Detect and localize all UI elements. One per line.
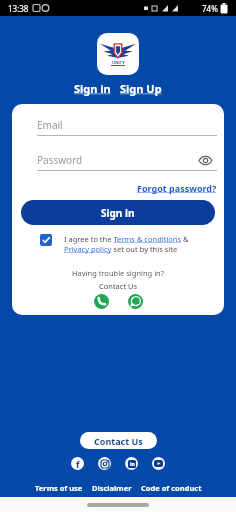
staticText: 13:38	[8, 3, 29, 14]
button[interactable]: Sign Up	[120, 81, 162, 96]
button[interactable]: f	[71, 457, 84, 470]
button[interactable]: Privacy policy set out by this site	[64, 244, 178, 254]
button[interactable]: Contact Us	[80, 432, 157, 449]
button[interactable]: Disclaimer	[92, 483, 132, 493]
staticText: in	[130, 461, 135, 468]
staticText: Email	[37, 118, 63, 132]
button[interactable]	[152, 457, 165, 470]
staticText: Sign in	[101, 206, 135, 220]
staticText: Contact Us	[99, 281, 138, 291]
staticText: Password	[37, 153, 83, 167]
staticText: Contact Us	[94, 435, 143, 447]
button[interactable]: Code of conduct	[141, 483, 202, 493]
button[interactable]: Sign in	[21, 200, 215, 225]
button[interactable]	[128, 294, 143, 309]
staticText: Having trouble signing in?	[72, 268, 164, 278]
button[interactable]: Sign in	[74, 81, 111, 96]
button[interactable]: Forgot password?	[137, 182, 217, 194]
button[interactable]	[94, 294, 109, 309]
staticText: UNITY	[112, 60, 125, 65]
button[interactable]	[98, 457, 111, 470]
staticText: f	[76, 458, 80, 470]
button[interactable]: I agree to the Terms & conditions &	[64, 234, 189, 244]
button[interactable]: Terms of use	[35, 483, 83, 493]
button[interactable]: in	[125, 457, 138, 470]
button[interactable]	[40, 234, 52, 246]
staticText: 74%	[202, 3, 218, 14]
